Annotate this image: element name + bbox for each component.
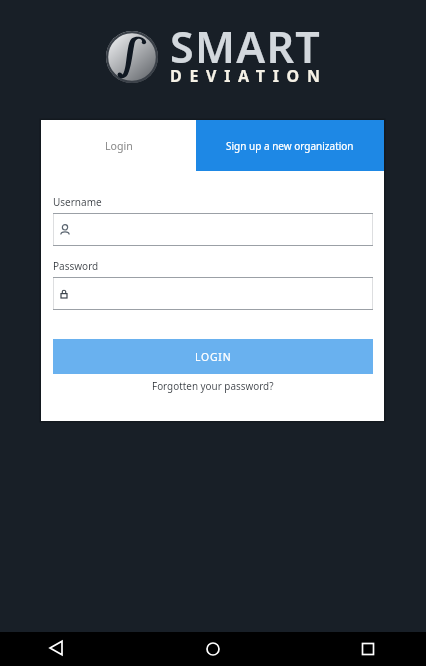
button[interactable] bbox=[53, 213, 373, 246]
button[interactable]: Back bbox=[40, 632, 72, 664]
button[interactable]: Login bbox=[41, 120, 196, 171]
staticText: Forgotten your password? bbox=[152, 379, 274, 392]
staticText: LOGIN bbox=[195, 350, 232, 364]
staticText: Username bbox=[53, 195, 102, 209]
button[interactable]: Sign up a new organization bbox=[196, 120, 384, 171]
button[interactable]: Forgotten your password? bbox=[152, 379, 274, 392]
staticText: Password bbox=[53, 259, 99, 273]
staticText: DEVIATION bbox=[170, 65, 328, 87]
button[interactable]: Recent apps bbox=[352, 633, 384, 665]
staticText: Sign up a new organization bbox=[226, 139, 354, 153]
button[interactable]: Home bbox=[197, 633, 229, 665]
staticText: Login bbox=[105, 139, 133, 153]
staticText: SMART bbox=[170, 17, 322, 76]
button[interactable] bbox=[53, 277, 373, 310]
button[interactable]: LOGIN bbox=[53, 339, 373, 374]
